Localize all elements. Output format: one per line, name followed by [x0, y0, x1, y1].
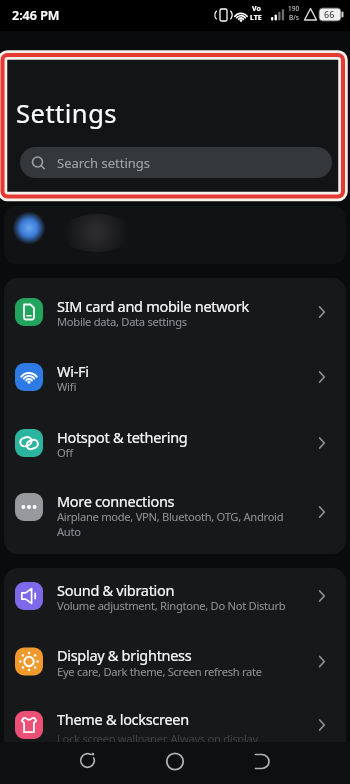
- staticText: Lock screen wallpaper, Always on display: [57, 731, 258, 746]
- button[interactable]: Wi-Fi: [4, 344, 346, 410]
- staticText: Sound & vibration: [57, 580, 175, 600]
- button[interactable]: SIM card and mobile network: [4, 278, 346, 344]
- button[interactable]: Search settings: [20, 147, 332, 178]
- button[interactable]: Theme & lockscreen: [4, 696, 346, 758]
- staticText: Hotspot & tethering: [57, 427, 188, 447]
- button[interactable]: [159, 745, 191, 777]
- staticText: Wi-Fi: [57, 361, 89, 381]
- staticText: Mobile data, Data settings: [57, 314, 187, 329]
- staticText: 190: [288, 4, 300, 13]
- staticText: 66: [324, 8, 335, 20]
- staticText: Search settings: [57, 154, 151, 172]
- button[interactable]: [72, 745, 104, 777]
- staticText: More connections: [57, 491, 175, 511]
- button[interactable]: More connections: [4, 476, 346, 552]
- staticText: SIM card and mobile network: [57, 296, 249, 316]
- staticText: Off: [57, 445, 73, 460]
- staticText: Wifi: [57, 379, 77, 394]
- staticText: Volume adjustment, Ringtone, Do Not Dist…: [57, 598, 286, 613]
- staticText: Airplane mode, VPN, Bluetooth, OTG, Andr…: [57, 509, 284, 524]
- staticText: Display & brightness: [57, 645, 192, 665]
- staticText: 2:46 PM: [12, 7, 60, 24]
- staticText: Vo: [252, 4, 261, 14]
- staticText: Theme & lockscreen: [57, 709, 189, 729]
- staticText: Auto: [57, 524, 81, 539]
- button[interactable]: [4, 206, 346, 264]
- staticText: Settings: [16, 96, 118, 131]
- staticText: B/s: [289, 13, 299, 22]
- staticText: LTE: [250, 13, 262, 23]
- button[interactable]: Sound & vibration: [4, 568, 346, 630]
- button[interactable]: [246, 745, 278, 777]
- button[interactable]: Display & brightness: [4, 630, 346, 696]
- button[interactable]: Hotspot & tethering: [4, 410, 346, 476]
- staticText: Eye care, Dark theme, Screen refresh rat…: [57, 664, 262, 679]
